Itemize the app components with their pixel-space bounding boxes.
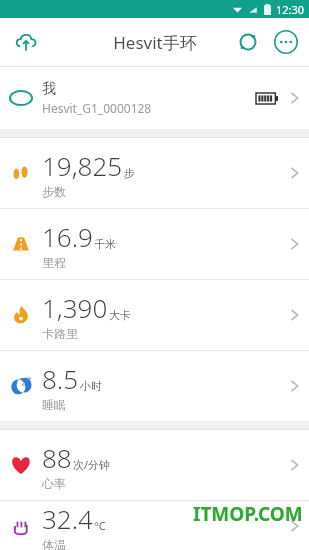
staticText: 88 xyxy=(42,440,72,475)
staticText: 睡眠 xyxy=(42,397,66,412)
staticText: 小时 xyxy=(80,379,102,393)
staticText: 步数 xyxy=(42,184,66,199)
button[interactable]: More options xyxy=(269,25,303,59)
staticText: Hesvit手环 xyxy=(113,31,197,54)
staticText: 12:30 xyxy=(276,2,305,17)
button[interactable]: 我 xyxy=(0,67,309,129)
button[interactable]: 32.4 xyxy=(0,501,309,550)
staticText: 里程 xyxy=(42,255,66,270)
staticText: 大卡 xyxy=(109,308,131,322)
staticText: 1,390 xyxy=(42,290,108,325)
staticText: Hesvit_G1_0000128 xyxy=(42,100,152,116)
staticText: 步 xyxy=(124,166,135,180)
staticText: 16.9 xyxy=(42,219,93,254)
staticText: 19,825 xyxy=(42,148,123,183)
button[interactable]: Upload to cloud xyxy=(8,24,44,60)
staticText: 心率 xyxy=(42,476,66,491)
button[interactable]: 8.5 xyxy=(0,351,309,421)
button[interactable]: 19,825 xyxy=(0,138,309,208)
staticText: 8.5 xyxy=(42,361,79,396)
button[interactable]: Sync xyxy=(231,25,265,59)
button[interactable]: 1,390 xyxy=(0,280,309,350)
staticText: 32.4 xyxy=(42,501,93,536)
staticText: 体温 xyxy=(42,537,66,550)
staticText: ITMOP.COM xyxy=(193,501,303,527)
staticText: 卡路里 xyxy=(42,326,78,341)
staticText: 次/分钟 xyxy=(73,457,111,472)
button[interactable]: 88 xyxy=(0,430,309,500)
staticText: 千米 xyxy=(94,237,116,251)
staticText: 我 xyxy=(42,80,56,98)
button[interactable]: 16.9 xyxy=(0,209,309,279)
staticText: °C xyxy=(94,518,106,533)
